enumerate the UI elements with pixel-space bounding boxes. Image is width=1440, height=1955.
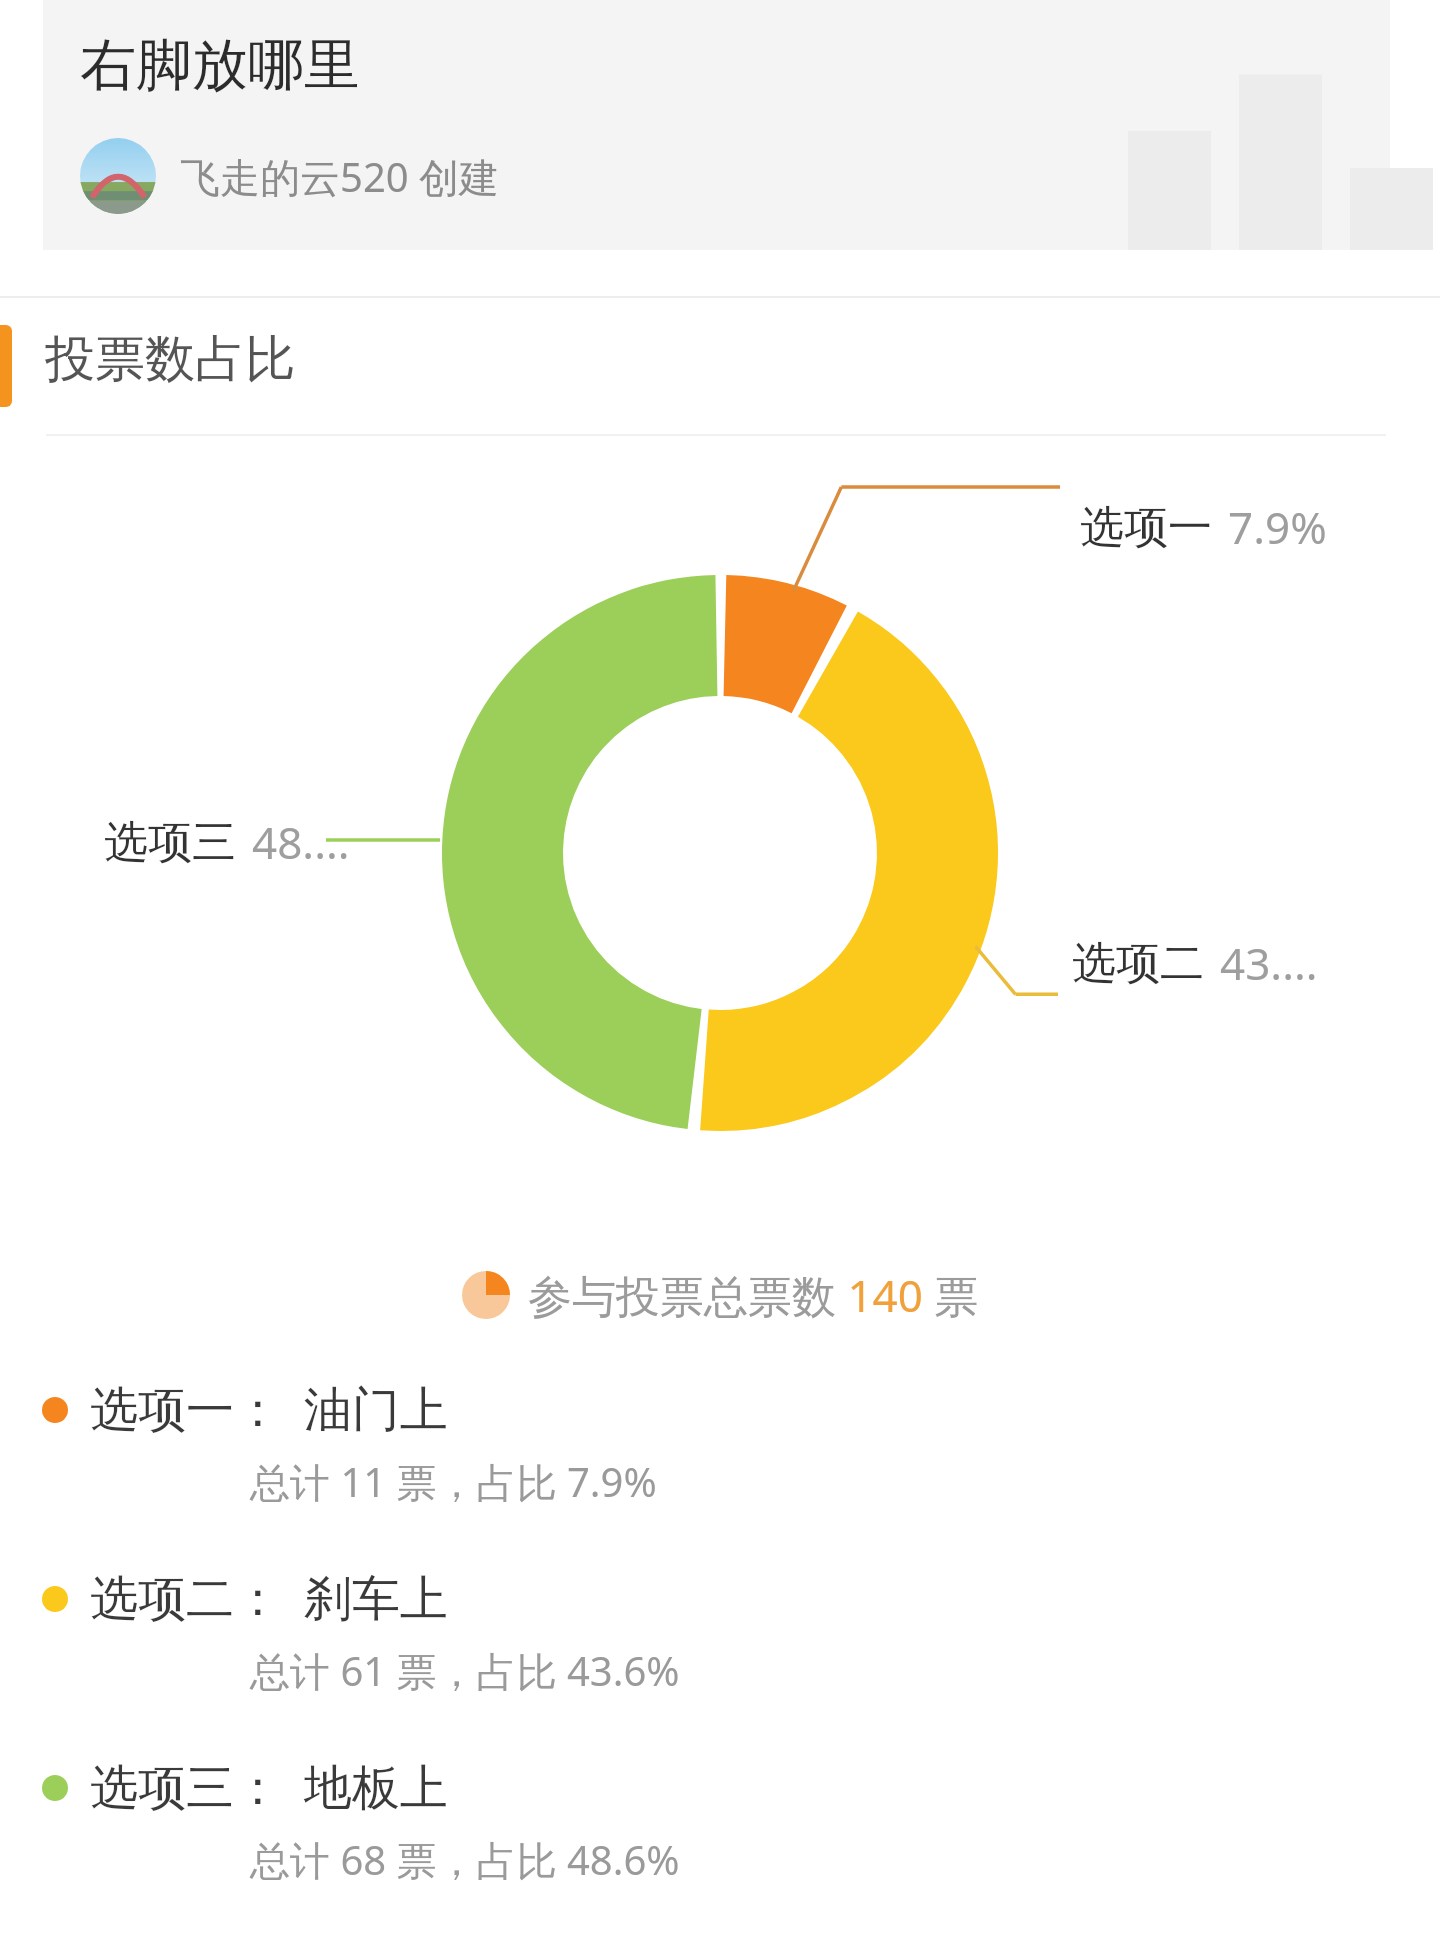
button[interactable]: 选项三：: [0, 1758, 1440, 1887]
button[interactable]: 选项一：: [0, 1380, 1440, 1509]
button[interactable]: 右脚放哪里: [43, 0, 1390, 250]
staticText: 48....: [252, 812, 350, 872]
staticText: 参与投票总票数 140 票: [528, 1265, 979, 1325]
staticText: 右脚放哪里: [80, 30, 360, 101]
staticText: 7.9%: [1228, 497, 1327, 557]
staticText: 43....: [1220, 933, 1318, 993]
staticText: 选项二：: [90, 1569, 282, 1629]
staticText: 选项三: [104, 815, 236, 870]
staticText: 飞走的云520 创建: [180, 149, 500, 204]
staticText: 投票数占比: [45, 328, 295, 391]
staticText: 油门上: [304, 1380, 448, 1440]
staticText: 选项三：: [90, 1758, 282, 1818]
button[interactable]: 选项二：: [0, 1569, 1440, 1698]
staticText: 刹车上: [304, 1569, 448, 1629]
staticText: 选项一：: [90, 1380, 282, 1440]
staticText: 总计 61 票，占比 43.6%: [250, 1643, 680, 1698]
staticText: 总计 11 票，占比 7.9%: [250, 1454, 657, 1509]
staticText: 地板上: [304, 1758, 448, 1818]
staticText: 总计 68 票，占比 48.6%: [250, 1832, 680, 1887]
staticText: 选项二: [1072, 936, 1204, 991]
staticText: 选项一: [1080, 500, 1212, 555]
